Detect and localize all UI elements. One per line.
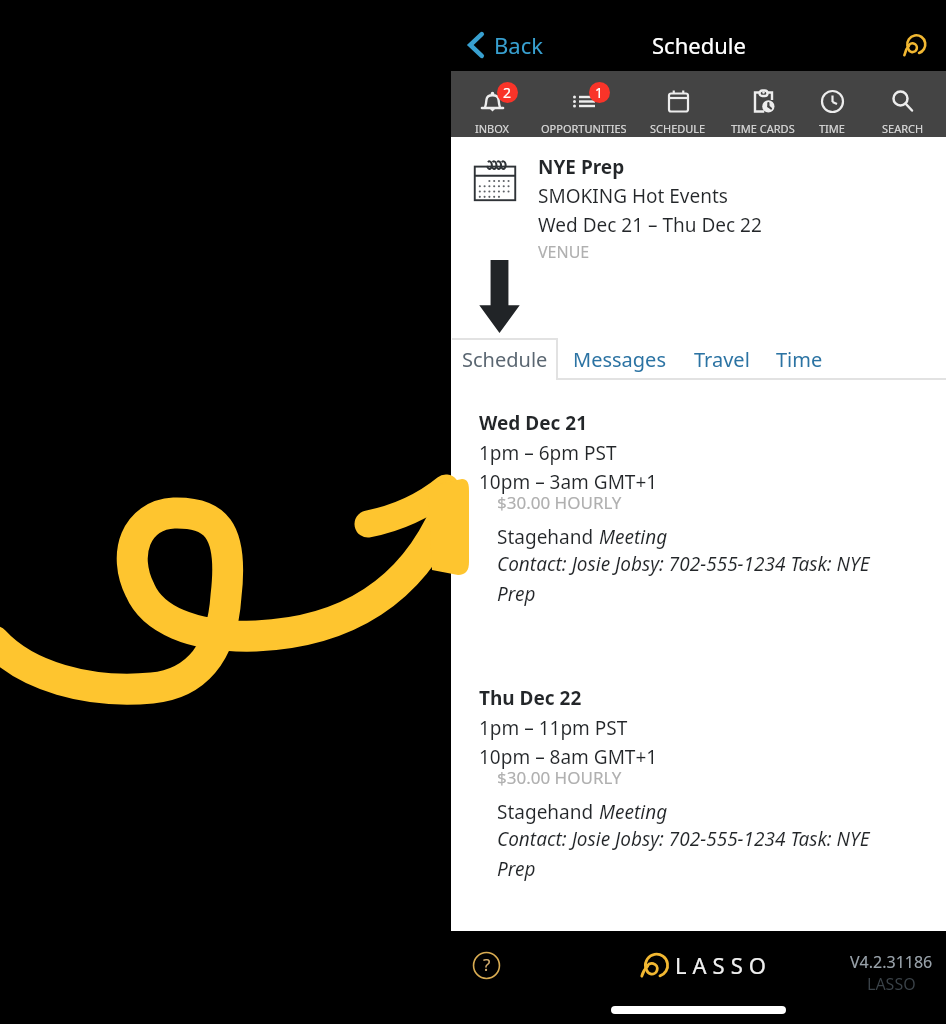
staticText: LASSO [675,950,772,980]
button[interactable]: SCHEDULE [635,71,721,137]
button[interactable]: Help [473,952,500,979]
staticText: 10pm – 3am GMT+1 [479,469,658,495]
staticText: V4.2.31186 [850,951,933,973]
staticText: 10pm – 8am GMT+1 [479,744,658,770]
button[interactable]: TIME CARDS [721,71,805,137]
staticText: Schedule [652,30,746,60]
staticText: Schedule [462,346,548,373]
staticText: LASSO [867,973,916,995]
button[interactable]: Time [776,338,823,380]
staticText: $30.00 HOURLY [497,491,622,514]
button[interactable]: NYE Prep [472,154,946,263]
staticText: Contact: Josie Jobsy: 702-555-1234 Task:… [497,826,885,881]
staticText: Meeting [599,524,668,550]
staticText: TIME [819,121,845,136]
button[interactable]: LASSO [629,949,772,983]
staticText: OPPORTUNITIES [541,121,627,136]
staticText: SEARCH [882,121,924,136]
staticText: $30.00 HOURLY [497,766,622,789]
button[interactable]: Lasso menu [890,24,932,66]
staticText: Wed Dec 21 – Thu Dec 22 [538,212,762,238]
staticText: 1pm – 11pm PST [479,715,628,741]
staticText: Wed Dec 21 [479,410,588,436]
button[interactable]: Schedule [451,338,558,380]
staticText: 1pm – 6pm PST [479,440,617,466]
staticText: Contact: Josie Jobsy: 702-555-1234 Task:… [497,551,885,606]
button[interactable]: Back [467,30,543,60]
button[interactable]: 1 [533,71,635,137]
staticText: 1 [595,83,604,102]
button[interactable]: SEARCH [859,71,946,137]
staticText: SMOKING Hot Events [538,183,728,209]
staticText: SCHEDULE [650,121,706,136]
staticText: Back [494,30,543,60]
staticText: Stagehand [497,524,599,550]
staticText: INBOX [475,121,510,136]
staticText: ? [483,953,491,976]
staticText: TIME CARDS [731,121,795,136]
button[interactable]: TIME [805,71,859,137]
staticText: Thu Dec 22 [479,685,582,711]
button[interactable]: 2 [451,71,533,137]
button[interactable]: Thu Dec 22 [479,685,928,881]
button[interactable]: Messages [573,338,666,380]
button[interactable]: Travel [694,338,750,380]
staticText: Time [776,346,823,373]
staticText: Travel [694,346,750,373]
button[interactable]: Wed Dec 21 [479,410,928,606]
staticText: VENUE [538,241,590,263]
staticText: 2 [503,83,512,102]
staticText: Messages [573,346,666,373]
staticText: NYE Prep [538,154,625,180]
staticText: Meeting [599,799,668,825]
staticText: Stagehand [497,799,599,825]
